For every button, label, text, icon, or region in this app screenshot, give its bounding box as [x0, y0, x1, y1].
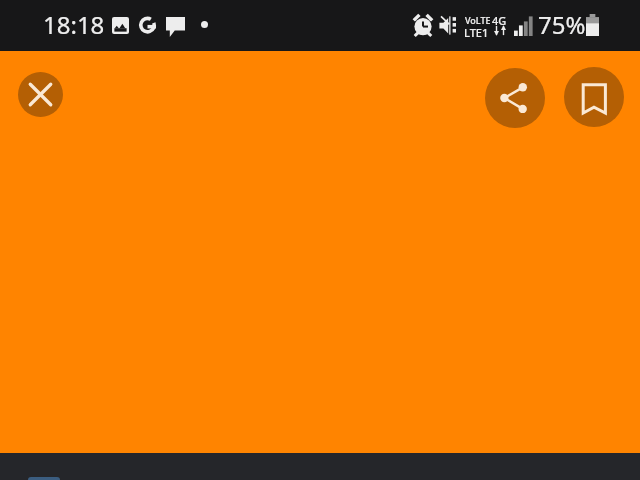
staticText: VoLTE [465, 14, 491, 26]
staticText: 18:18 [43, 8, 105, 41]
staticText: 4G [492, 13, 507, 28]
button[interactable]: Recent apps [28, 477, 60, 480]
staticText: 75% [538, 8, 586, 41]
button[interactable]: Bookmark [564, 67, 624, 127]
staticText: LTE1 [464, 25, 489, 40]
button[interactable]: Close [18, 72, 63, 117]
button[interactable]: Share [485, 68, 545, 128]
